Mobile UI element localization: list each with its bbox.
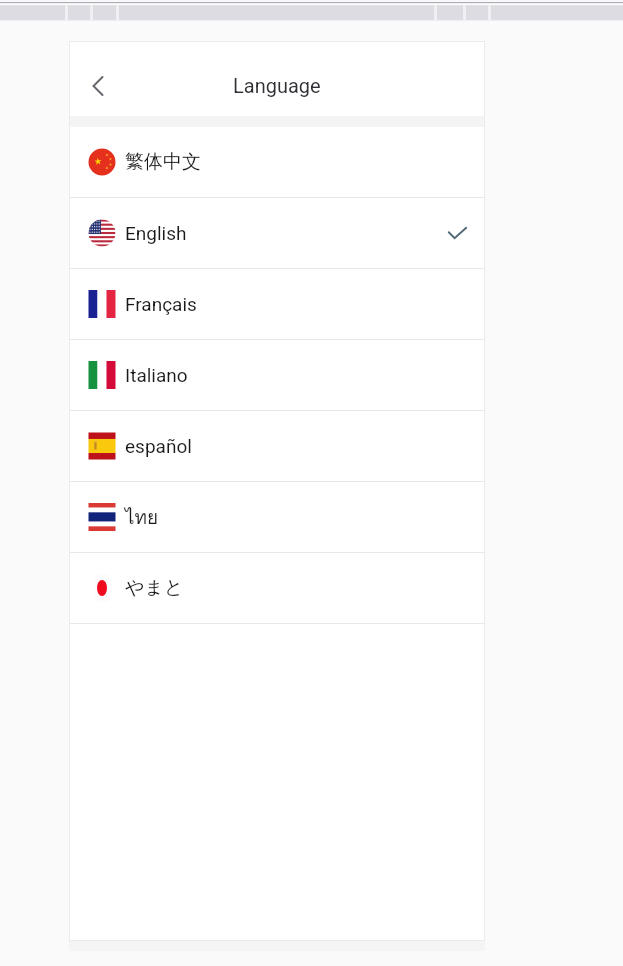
staticText: English [125,222,187,244]
staticText: Language [233,74,321,97]
button[interactable]: español [69,411,485,481]
staticText: español [125,435,192,457]
staticText: 繁体中文 [125,150,201,174]
button[interactable]: Selected [435,211,479,255]
button[interactable]: Français [69,269,485,339]
button[interactable]: やまと [69,553,485,623]
staticText: Italiano [125,364,188,386]
staticText: Français [125,293,197,315]
button[interactable]: Back [76,64,120,108]
button[interactable]: Italiano [69,340,485,410]
button[interactable]: 繁体中文 [69,127,485,197]
button[interactable]: English [69,198,485,268]
staticText: やまと [125,576,184,600]
button[interactable]: ไทย [69,482,485,552]
staticText: ไทย [125,502,159,532]
